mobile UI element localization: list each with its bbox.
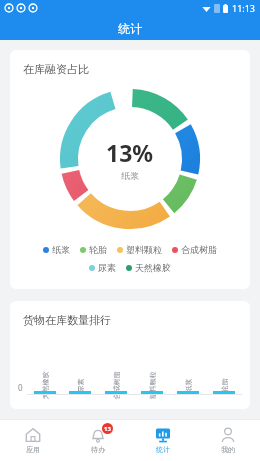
staticText: 尿素 xyxy=(98,262,116,273)
staticText: 尿素 xyxy=(75,378,84,392)
staticText: 13 xyxy=(104,425,111,433)
staticText: 轮胎 xyxy=(89,244,107,255)
staticText: 合成树脂 xyxy=(111,371,120,399)
staticText: 塑料颗粒 xyxy=(147,371,156,399)
staticText: 天然橡胶 xyxy=(135,262,171,273)
staticText: 塑料颗粒 xyxy=(126,244,162,255)
button[interactable]: 我的 xyxy=(195,419,260,461)
staticText: 0 xyxy=(18,382,23,393)
staticText: 我的 xyxy=(221,445,235,454)
button[interactable]: 轮胎 xyxy=(80,244,107,255)
staticText: 货物在库数量排行 xyxy=(23,313,111,327)
button[interactable]: 合成树脂 xyxy=(172,244,217,255)
staticText: 统计 xyxy=(118,21,142,36)
staticText: 天然橡胶 xyxy=(40,371,49,399)
staticText: 在库融资占比 xyxy=(23,62,89,76)
staticText: 13% xyxy=(106,137,154,168)
button[interactable]: 尿素 xyxy=(89,262,116,273)
staticText: 统计 xyxy=(156,445,170,454)
staticText: 待办 xyxy=(91,445,105,454)
staticText: 11:13 xyxy=(232,2,256,14)
staticText: 应用 xyxy=(26,445,40,454)
staticText: 纸浆 xyxy=(52,244,70,255)
staticText: 轮胎 xyxy=(219,378,228,392)
button[interactable]: 应用 xyxy=(0,419,65,461)
button[interactable]: 纸浆 xyxy=(43,244,70,255)
button[interactable]: 统计 xyxy=(130,419,195,461)
staticText: 纸浆 xyxy=(183,378,192,392)
button[interactable]: 天然橡胶 xyxy=(126,262,171,273)
staticText: 纸浆 xyxy=(121,170,139,181)
staticText: 合成树脂 xyxy=(181,244,217,255)
button[interactable]: 待办 xyxy=(65,419,130,461)
button[interactable]: 塑料颗粒 xyxy=(117,244,162,255)
